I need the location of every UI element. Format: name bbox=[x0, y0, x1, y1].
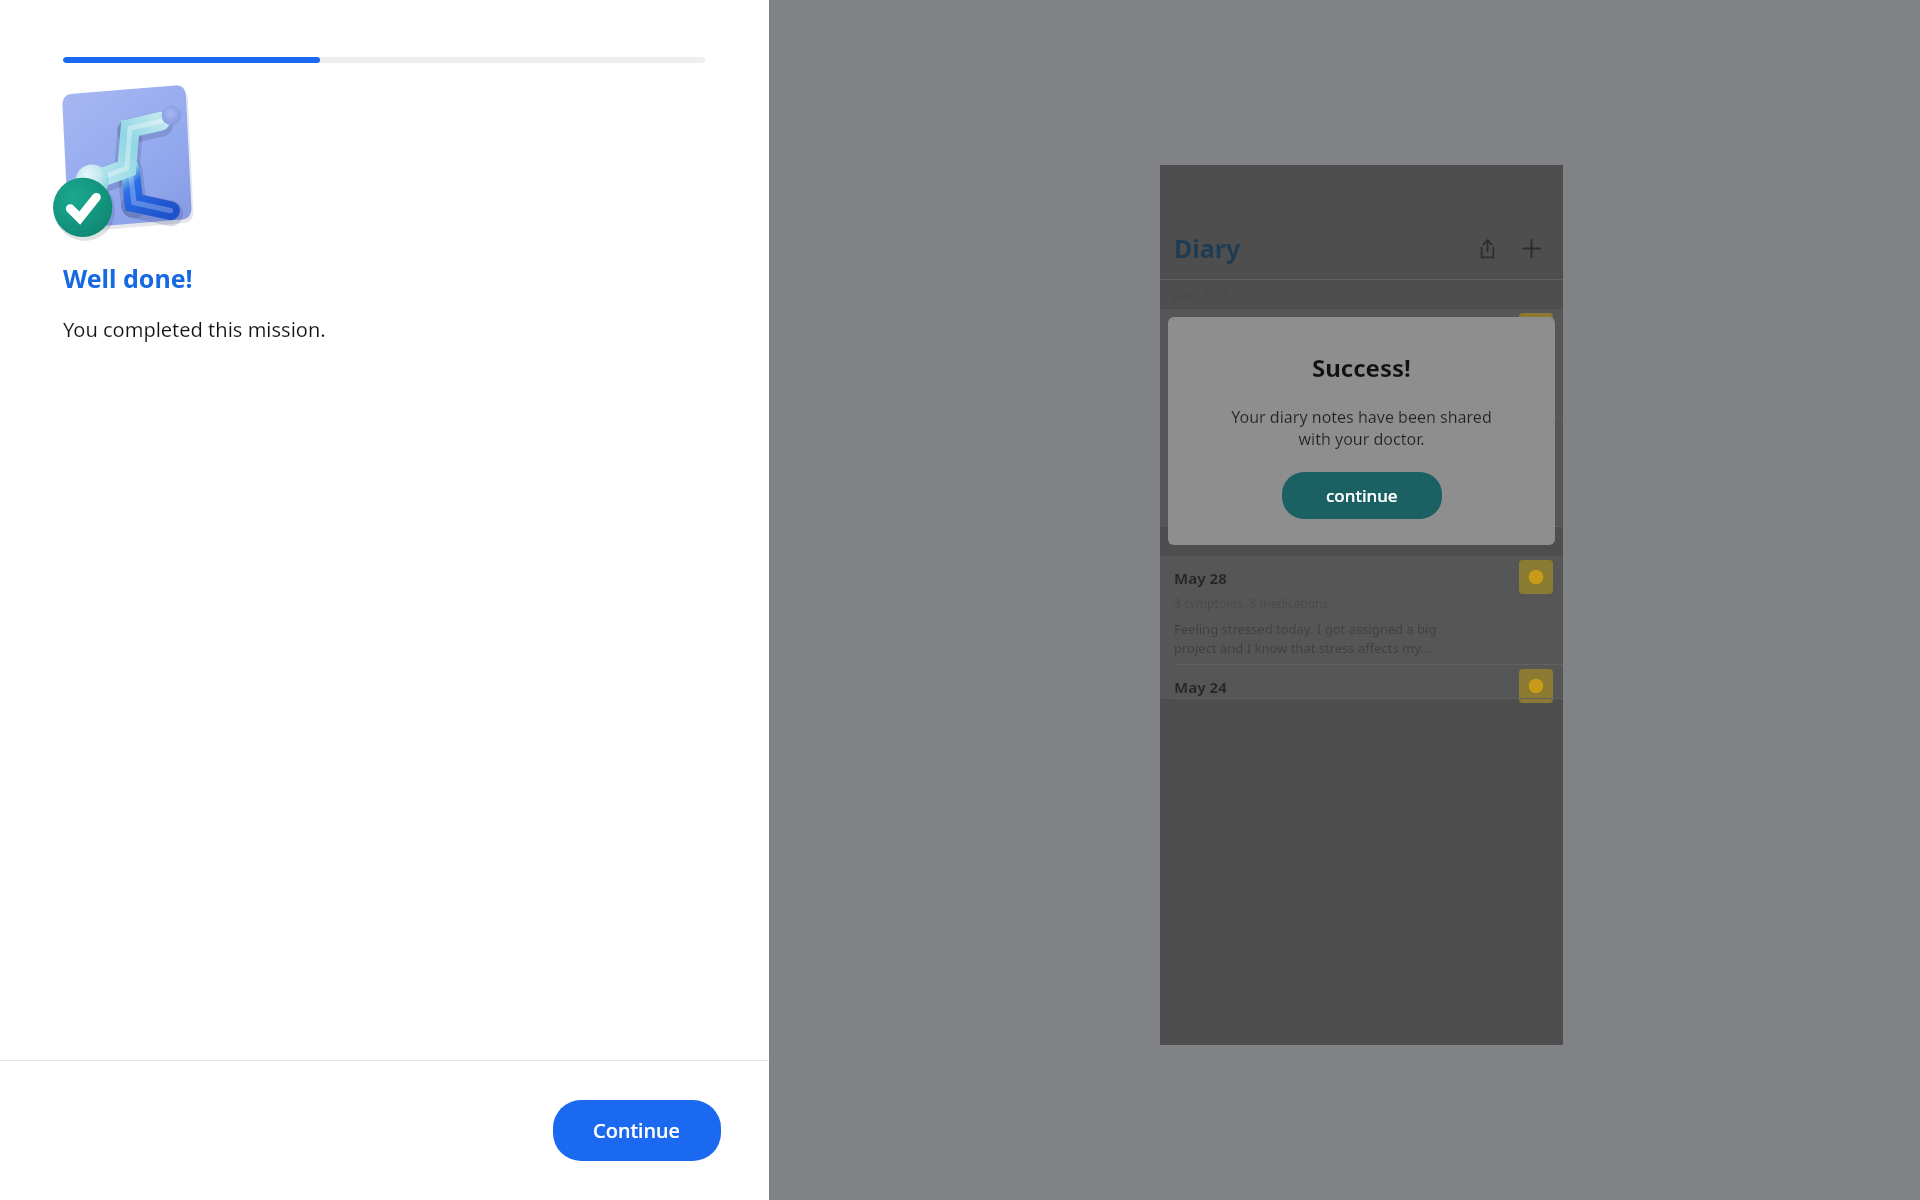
staticText: Continue bbox=[593, 1117, 681, 1144]
button[interactable]: May 28 bbox=[1160, 556, 1563, 665]
staticText: Not feeling to great today. I've had a f… bbox=[1174, 373, 1418, 410]
button[interactable]: Share bbox=[1469, 230, 1505, 266]
button[interactable]: May 24 bbox=[1160, 665, 1563, 699]
staticText: Feeling stressed today. I got assigned a… bbox=[1174, 620, 1437, 657]
staticText: MAY 2019 bbox=[1174, 534, 1226, 549]
staticText: I'm starting to feel a flare coming on. … bbox=[1174, 482, 1439, 519]
staticText: 2 symptoms, 3 medications bbox=[1174, 348, 1329, 364]
staticText: Well done! bbox=[63, 261, 193, 295]
staticText: May 24 bbox=[1174, 677, 1227, 697]
button[interactable]: Add entry bbox=[1513, 230, 1549, 266]
staticText: continue bbox=[1326, 484, 1398, 507]
staticText: 3 symptoms, 3 medications bbox=[1174, 595, 1329, 611]
staticText: Your diary notes have been shared with y… bbox=[1231, 406, 1492, 450]
button[interactable]: continue bbox=[1282, 472, 1442, 519]
button[interactable]: June 3 bbox=[1160, 309, 1563, 418]
staticText: May 28 bbox=[1174, 568, 1227, 588]
staticText: Diary bbox=[1174, 231, 1241, 265]
staticText: Success! bbox=[1312, 351, 1411, 384]
button[interactable]: June 1 bbox=[1160, 418, 1563, 527]
staticText: You completed this mission. bbox=[63, 316, 326, 343]
button[interactable]: Continue bbox=[553, 1100, 721, 1161]
staticText: 2 symptoms, 3 medications, flaring bbox=[1174, 457, 1372, 473]
